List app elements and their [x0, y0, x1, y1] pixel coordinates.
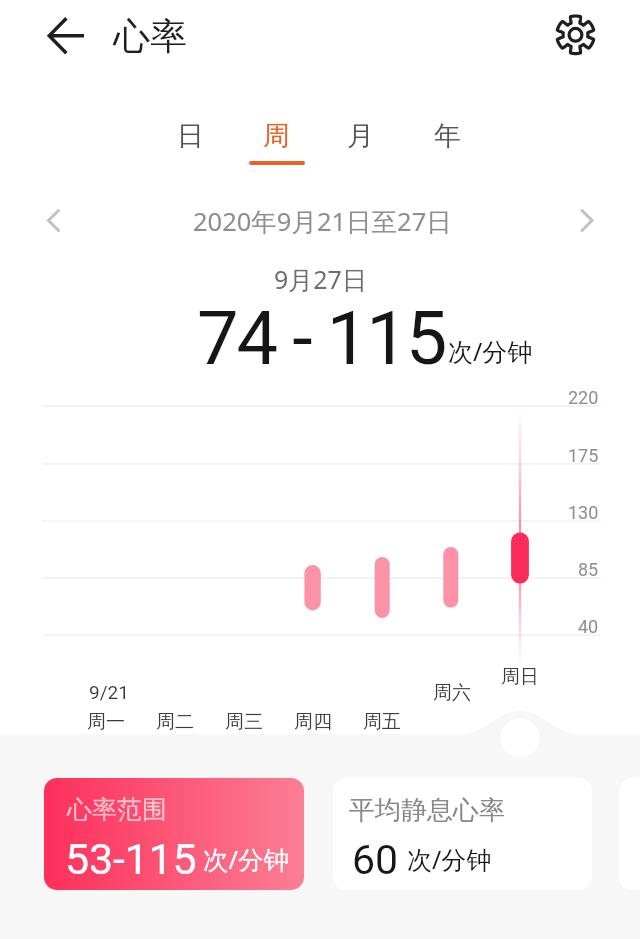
button[interactable]: Previous week [26, 192, 82, 248]
staticText: 心率范围 [67, 794, 167, 825]
staticText: 周四 [294, 710, 332, 734]
button[interactable]: 周 [244, 108, 308, 164]
button[interactable]: Back [38, 8, 94, 64]
staticText: 130 [568, 502, 599, 523]
staticText: 85 [578, 559, 599, 580]
staticText: 175 [568, 445, 599, 466]
staticText: 40 [578, 616, 599, 637]
staticText: 周六 [433, 681, 471, 705]
button[interactable]: 日 [158, 108, 222, 164]
staticText: 9/21 [89, 681, 129, 703]
staticText: 220 [568, 387, 599, 408]
staticText: 年 [434, 119, 461, 153]
staticText: 次/分钟 [407, 842, 492, 876]
staticText: 周日 [501, 665, 539, 689]
staticText: 心率 [113, 13, 187, 60]
staticText: 周二 [156, 710, 194, 734]
staticText: 日 [177, 119, 204, 153]
button[interactable]: Next week [560, 192, 616, 248]
staticText: 次/分钟 [448, 334, 533, 368]
staticText: 2020年9月21日至27日 [193, 204, 452, 239]
staticText: 周三 [225, 710, 263, 734]
staticText: 月 [347, 119, 374, 153]
button[interactable]: 月 [328, 108, 392, 164]
staticText: 9月27日 [274, 262, 367, 296]
staticText: 53-115 [65, 834, 197, 884]
staticText: 周五 [363, 710, 401, 734]
button[interactable]: 平均静息心率 [333, 778, 592, 890]
staticText: 60 [352, 836, 399, 884]
button[interactable]: 心率范围 [44, 778, 304, 890]
staticText: 74 - 115 [197, 295, 446, 382]
staticText: 次/分钟 [203, 842, 289, 877]
staticText: 周 [263, 119, 290, 153]
button[interactable]: Settings [547, 8, 603, 64]
staticText: 周一 [87, 710, 125, 734]
button[interactable]: 年 [415, 108, 479, 164]
staticText: 平均静息心率 [349, 794, 505, 827]
